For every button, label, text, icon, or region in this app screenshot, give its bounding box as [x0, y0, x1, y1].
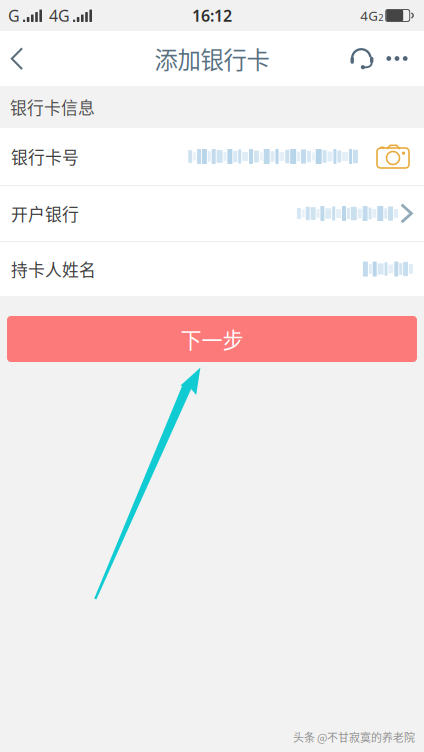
staticText: 开户银行	[11, 201, 79, 226]
button[interactable]: More options	[378, 31, 416, 86]
button[interactable]: 持卡人姓名	[0, 242, 424, 296]
staticText: 银行卡信息	[10, 95, 95, 119]
button[interactable]: Customer service	[345, 31, 378, 86]
button[interactable]: 银行卡号	[0, 128, 424, 185]
staticText: 4G	[360, 7, 378, 24]
staticText: 16:12	[192, 5, 232, 26]
button[interactable]: Back	[0, 31, 34, 86]
staticText: 下一步	[180, 324, 243, 354]
staticText: 4G	[49, 5, 70, 26]
staticText: 银行卡号	[11, 144, 79, 169]
button[interactable]: 开户银行	[0, 186, 424, 241]
staticText: G	[8, 5, 20, 26]
button[interactable]: 下一步	[7, 316, 417, 362]
staticText: 2	[378, 11, 383, 24]
staticText: 持卡人姓名	[11, 257, 96, 281]
staticText: 头条 @不甘寂寞的养老院	[293, 729, 415, 745]
staticText: 添加银行卡	[154, 42, 269, 75]
